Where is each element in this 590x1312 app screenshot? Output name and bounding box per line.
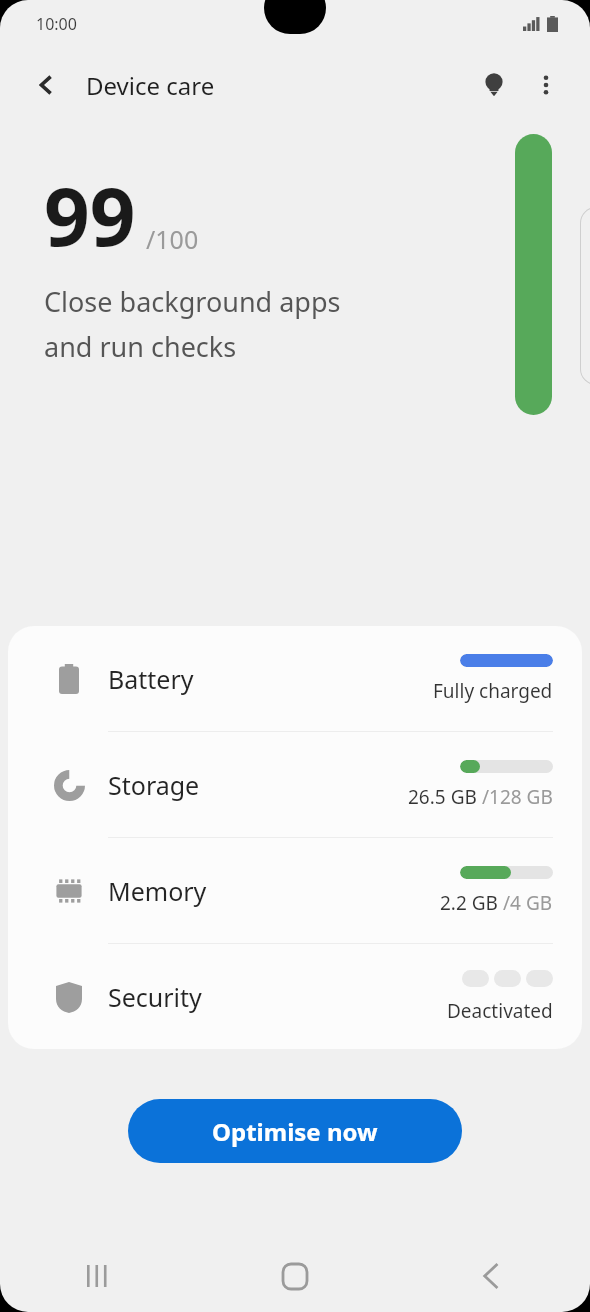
staticText: Security: [108, 980, 202, 1014]
staticText: 99: [44, 160, 136, 269]
staticText: /4 GB: [503, 890, 553, 916]
button[interactable]: Back: [393, 1240, 590, 1312]
staticText: 26.5 GB: [408, 784, 482, 810]
staticText: and run checks: [44, 328, 237, 365]
staticText: Storage: [108, 768, 200, 802]
button[interactable]: Back: [22, 60, 72, 110]
staticText: 2.2 GB: [440, 890, 503, 916]
staticText: Device care: [86, 69, 215, 102]
staticText: Fully charged: [433, 678, 553, 704]
staticText: Battery: [108, 662, 194, 696]
button[interactable]: Storage: [8, 732, 582, 837]
button[interactable]: Home: [196, 1240, 393, 1312]
button[interactable]: More options: [520, 59, 572, 111]
staticText: Close background apps: [44, 283, 341, 320]
button[interactable]: Tips: [468, 59, 520, 111]
button[interactable]: Battery: [8, 626, 582, 731]
staticText: /128 GB: [482, 784, 553, 810]
staticText: Deactivated: [447, 998, 553, 1024]
button[interactable]: Security: [8, 944, 582, 1049]
staticText: 10:00: [36, 13, 77, 35]
button[interactable]: Memory: [8, 838, 582, 943]
staticText: Memory: [108, 874, 207, 908]
staticText: Optimise now: [212, 1115, 378, 1148]
staticText: /100: [146, 222, 199, 256]
button[interactable]: Optimise now: [128, 1099, 462, 1163]
button[interactable]: Recent apps: [0, 1240, 196, 1312]
